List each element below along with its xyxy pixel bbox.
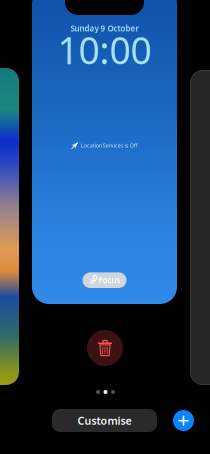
staticText: 10:00: [57, 25, 151, 75]
button[interactable]: Focus: [82, 272, 126, 288]
staticText: Sunday 9 October: [70, 23, 138, 34]
staticText: Focus: [98, 275, 120, 285]
staticText: Customise: [77, 413, 131, 428]
button[interactable]: Add new wallpaper: [173, 410, 194, 431]
staticText: Location Services is Off: [81, 142, 138, 149]
button[interactable]: Customise: [52, 409, 157, 432]
button[interactable]: Delete wallpaper: [87, 330, 123, 366]
